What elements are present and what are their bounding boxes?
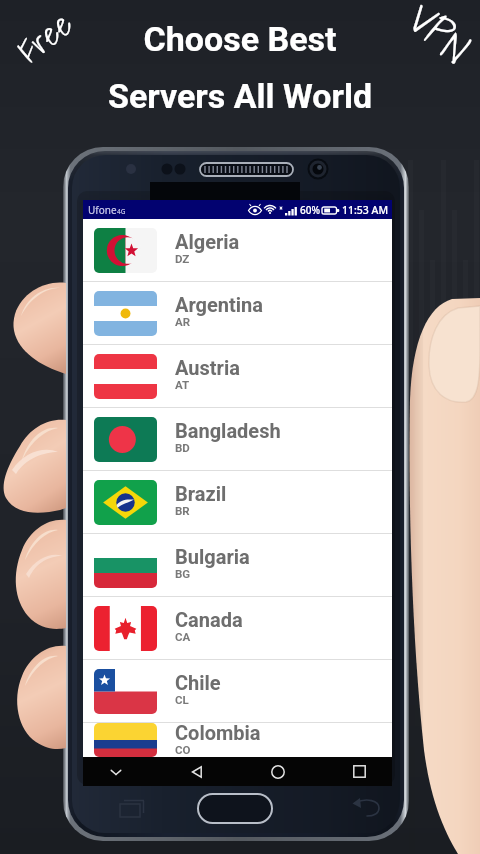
staticText: BR	[175, 504, 190, 517]
staticText: Ufone	[88, 203, 117, 217]
button[interactable]: Argentina	[83, 282, 392, 344]
staticText: CA	[175, 630, 191, 643]
button[interactable]: Chile	[83, 660, 392, 722]
staticText: 4G	[117, 207, 126, 216]
button[interactable]: Home	[255, 757, 301, 786]
staticText: AR	[175, 315, 191, 328]
staticText: Canada	[175, 608, 243, 631]
staticText: BD	[175, 441, 190, 454]
staticText: Bulgaria	[175, 545, 250, 568]
button[interactable]: Colombia	[83, 723, 392, 757]
staticText: Austria	[175, 356, 240, 379]
staticText: AT	[175, 378, 190, 391]
staticText: VPN	[392, 0, 480, 81]
button[interactable]: Recents	[336, 757, 382, 786]
staticText: BG	[175, 567, 191, 580]
staticText: Bangladesh	[175, 419, 281, 442]
staticText: Algeria	[175, 230, 240, 253]
button[interactable]: Bangladesh	[83, 408, 392, 470]
button[interactable]: Brazil	[83, 471, 392, 533]
staticText: Free	[6, 0, 84, 75]
button[interactable]: Algeria	[83, 219, 392, 281]
staticText: Argentina	[175, 293, 263, 316]
button[interactable]: Back	[174, 757, 220, 786]
staticText: 11:53 AM	[342, 203, 389, 217]
staticText: 60%	[300, 203, 320, 217]
staticText: CL	[175, 693, 189, 706]
staticText: Choose Best	[0, 19, 480, 59]
staticText: Servers All World	[0, 76, 480, 116]
button[interactable]: Bulgaria	[83, 534, 392, 596]
staticText: Chile	[175, 671, 221, 694]
staticText: Colombia	[175, 721, 261, 744]
button[interactable]: Hide navigation bar	[93, 757, 139, 786]
button[interactable]: Canada	[83, 597, 392, 659]
button[interactable]: Austria	[83, 345, 392, 407]
staticText: CO	[175, 743, 191, 754]
staticText: DZ	[175, 252, 190, 265]
staticText: Brazil	[175, 482, 227, 505]
